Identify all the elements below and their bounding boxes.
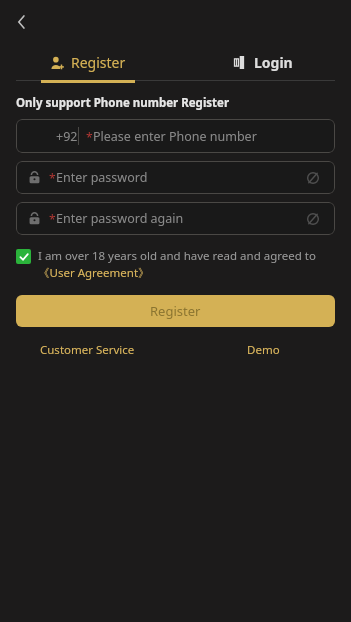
- button[interactable]: *: [16, 202, 335, 235]
- staticText: Customer Service: [40, 342, 135, 358]
- staticText: Enter password: [56, 169, 148, 186]
- staticText: +92: [56, 128, 78, 145]
- staticText: Register: [150, 302, 201, 320]
- button[interactable]: Register: [0, 44, 175, 80]
- button[interactable]: Customer Service: [36, 338, 139, 362]
- button[interactable]: Back: [6, 6, 38, 38]
- staticText: Please enter Phone number: [93, 128, 257, 145]
- staticText: *: [49, 211, 56, 227]
- button[interactable]: Register: [16, 295, 335, 327]
- button[interactable]: +92: [16, 119, 335, 153]
- staticText: Register: [71, 53, 126, 72]
- button[interactable]: Login: [175, 44, 351, 80]
- staticText: Login: [254, 53, 293, 72]
- staticText: I am over 18 years old and have read and…: [38, 248, 335, 281]
- button[interactable]: Show password: [303, 209, 323, 229]
- staticText: *: [86, 129, 93, 145]
- staticText: Enter password again: [56, 210, 184, 227]
- button[interactable]: Show password: [303, 168, 323, 188]
- staticText: *: [49, 170, 56, 186]
- staticText: Demo: [247, 342, 280, 358]
- button[interactable]: I am over 18 years old and have read and…: [16, 248, 335, 281]
- staticText: Only support Phone number Register: [16, 95, 230, 111]
- button[interactable]: Demo: [243, 338, 284, 362]
- button[interactable]: *: [16, 161, 335, 194]
